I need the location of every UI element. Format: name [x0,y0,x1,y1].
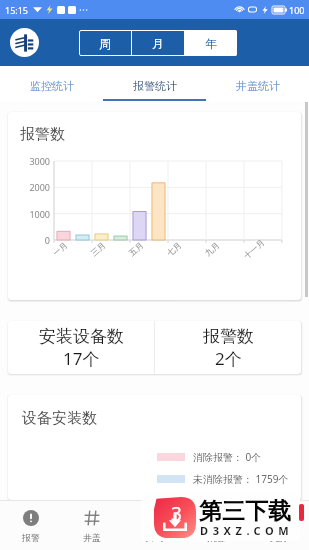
staticText: 2000 [12,181,50,193]
staticText: 3 [171,501,182,527]
staticText: 消息 [207,532,225,543]
button[interactable]: 扫码 [123,510,185,550]
staticText: 十一月 [242,237,266,261]
staticText: 井盖 [83,532,101,543]
button[interactable]: 设备安装数 [8,395,301,500]
button[interactable]: Menu [10,28,39,57]
staticText: 井盖统计 [236,79,280,93]
staticText: 五月 [127,240,145,258]
staticText: 报警统计 [133,79,177,93]
button[interactable]: 井盖统计 [206,66,309,99]
staticText: 七月 [165,240,183,258]
staticText: 安装设备数 [39,326,124,347]
button[interactable]: 井盖 [61,510,123,550]
staticText: 设备安装数 [22,409,97,428]
button[interactable]: 报警统计 [103,66,206,99]
button[interactable]: 消息 [185,510,247,550]
staticText: 九月 [203,240,221,258]
staticText: 月 [152,36,164,51]
staticText: 3000 [12,155,50,167]
staticText: 2个 [215,347,242,370]
button[interactable]: 监控统计 [0,66,103,99]
staticText: 年 [205,36,217,51]
staticText: 0 [12,234,50,246]
staticText: 扫码 [145,532,163,543]
staticText: 未消除报警： 1759个 [193,472,289,486]
button[interactable]: 我的 [247,510,309,550]
button[interactable]: 报警数 [8,112,301,300]
staticText: 15:15 [5,4,29,16]
staticText: 第三下载 [199,497,291,526]
button[interactable]: 报警 [0,510,61,550]
button[interactable]: 年 [185,30,237,56]
button[interactable]: 安装设备数 [8,321,154,374]
staticText: 报警数 [203,326,254,347]
staticText: 周 [99,36,111,51]
button[interactable]: 周 [79,30,131,56]
staticText: 一月 [51,240,69,258]
staticText: 监控统计 [30,79,74,93]
button[interactable]: 报警数 [155,321,301,374]
staticText: 100 [289,4,305,16]
staticText: 三月 [89,240,107,258]
staticText: 报警 [22,532,40,543]
staticText: D3XZ.COM [200,523,294,538]
staticText: 1000 [12,208,50,220]
staticText: 报警数 [20,125,65,144]
button[interactable]: 月 [132,30,184,56]
staticText: 消除报警： 0个 [193,450,262,464]
staticText: 17个 [63,347,100,370]
staticText: 我的 [269,532,287,543]
